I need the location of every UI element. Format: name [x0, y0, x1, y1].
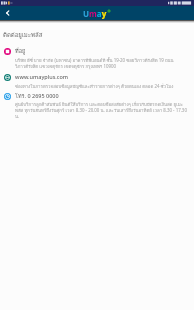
staticText: ติดต่อยูเมะพลัส: [3, 30, 43, 40]
button[interactable]: ที่อยู่: [0, 0, 194, 13]
staticText: โทร. 0 2695 0000: [15, 92, 59, 101]
staticText: www.umayplus.com: [15, 73, 69, 80]
staticText: ช่องทางในการตรวจสอบข้อมูลบัญชีและทำรายกา…: [15, 83, 189, 90]
staticText: บริษัท อีซี่ บาย จำกัด (มหาชน) อาคารทีพี…: [15, 57, 189, 70]
button[interactable]: โทร. 0 2695 0000: [0, 0, 194, 19]
staticText: ที่อยู่: [15, 47, 26, 56]
staticText: Umay: [83, 8, 107, 19]
button[interactable]: www.umayplus.com: [0, 0, 194, 7]
staticText: ศูนย์บริการลูกค้าสัมพันธ์ ยินดีให้บริการ…: [15, 101, 189, 120]
button[interactable]: Back: [0, 6, 16, 20]
